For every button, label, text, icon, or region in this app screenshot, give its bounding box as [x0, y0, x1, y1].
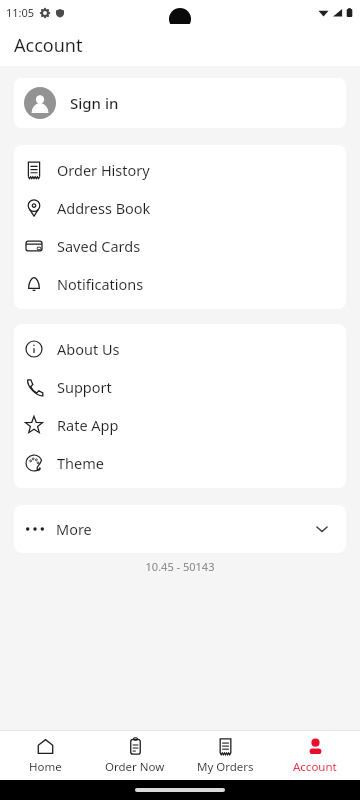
staticText: Home — [29, 759, 62, 775]
button[interactable]: Theme — [14, 444, 346, 482]
button[interactable]: Saved Cards — [14, 227, 346, 265]
button[interactable]: About Us — [14, 330, 346, 368]
button[interactable]: Notifications — [14, 265, 346, 303]
staticText: Theme — [57, 453, 104, 473]
staticText: Order History — [57, 160, 150, 180]
staticText: Support — [57, 377, 112, 397]
button[interactable]: Address Book — [14, 189, 346, 227]
button[interactable]: Order History — [14, 151, 346, 189]
staticText: Order Now — [105, 759, 165, 775]
button[interactable]: Support — [14, 368, 346, 406]
staticText: My Orders — [197, 759, 254, 775]
staticText: About Us — [57, 339, 120, 359]
staticText: Account — [293, 759, 337, 775]
button[interactable]: My Orders — [180, 731, 270, 780]
staticText: 10.45 - 50143 — [0, 559, 360, 574]
staticText: Notifications — [57, 274, 144, 294]
staticText: Account — [14, 33, 83, 58]
staticText: Address Book — [57, 198, 151, 218]
button[interactable]: Rate App — [14, 406, 346, 444]
button[interactable]: More — [14, 505, 346, 553]
staticText: More — [56, 519, 92, 539]
staticText: Rate App — [57, 415, 119, 435]
button[interactable]: Account — [270, 731, 360, 780]
staticText: 11:05 — [6, 5, 35, 20]
staticText: Saved Cards — [57, 236, 141, 256]
button[interactable]: Sign in — [14, 78, 346, 128]
button[interactable]: Order Now — [90, 731, 180, 780]
button[interactable]: Home — [0, 731, 90, 780]
staticText: Sign in — [70, 93, 119, 113]
